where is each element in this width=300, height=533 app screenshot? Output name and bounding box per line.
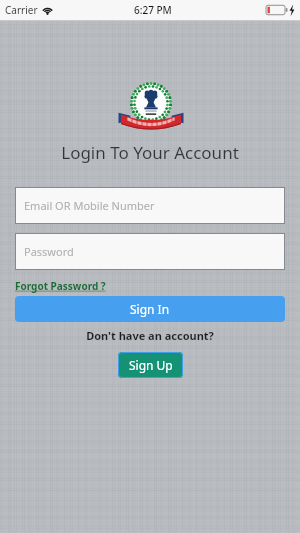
other: Wi-Fi bbox=[42, 6, 53, 15]
staticText: Password bbox=[24, 244, 74, 259]
button[interactable]: Sign Up bbox=[118, 352, 183, 378]
staticText: Don't have an account? bbox=[0, 328, 300, 343]
staticText: Email OR Mobile Number bbox=[24, 198, 155, 213]
staticText: Login To Your Account bbox=[0, 141, 300, 164]
button[interactable]: Email OR Mobile Number bbox=[15, 187, 285, 224]
button[interactable]: Sign In bbox=[15, 296, 285, 322]
staticText: 6:27 PM bbox=[134, 3, 172, 17]
staticText: Carrier bbox=[5, 3, 38, 17]
staticText: Sign Up bbox=[129, 357, 173, 373]
other: Battery charging bbox=[265, 4, 295, 16]
button[interactable]: Password bbox=[15, 233, 285, 270]
staticText: Sign In bbox=[130, 301, 170, 317]
button[interactable]: Forgot Password ? bbox=[15, 279, 106, 293]
